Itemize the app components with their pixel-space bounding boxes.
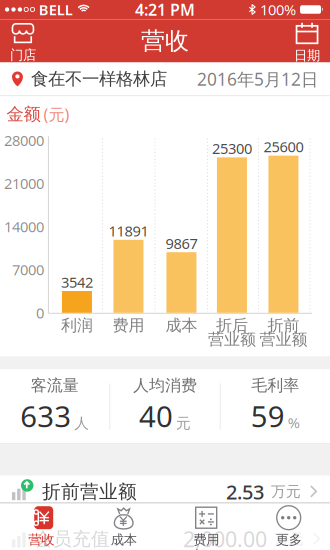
staticText: 营收: [141, 26, 189, 56]
staticText: 100%: [260, 0, 296, 19]
staticText: 折前营业额: [42, 480, 137, 503]
staticText: 9867: [165, 233, 197, 253]
staticText: 更多: [276, 532, 302, 548]
staticText: 折后: [216, 315, 248, 335]
staticText: 食在不一样格林店: [31, 68, 167, 90]
staticText: 4:21 PM: [135, 0, 195, 20]
staticText: 28000: [4, 131, 44, 150]
staticText: 利润: [61, 315, 93, 335]
staticText: 客流量: [31, 376, 79, 395]
staticText: 2.53: [226, 478, 264, 505]
staticText: 2,000.00: [183, 525, 267, 550]
staticText: 633: [20, 396, 71, 435]
staticText: 40: [139, 396, 173, 435]
staticText: 折前: [267, 315, 299, 335]
staticText: 25600: [263, 137, 303, 156]
staticText: 元: [176, 414, 191, 432]
staticText: BELL: [39, 0, 73, 19]
button[interactable]: 费用: [165, 503, 247, 549]
staticText: 成本: [165, 315, 197, 335]
staticText: 成本: [111, 532, 137, 548]
staticText: 25300: [212, 139, 252, 158]
staticText: 费用: [112, 315, 144, 335]
staticText: 金额: [6, 104, 40, 125]
staticText: 营业额: [259, 329, 307, 349]
staticText: 11891: [108, 221, 148, 241]
staticText: 人均消费: [133, 376, 197, 395]
staticText: 日期: [294, 47, 320, 64]
button[interactable]: 门店: [0, 19, 46, 62]
button[interactable]: 营收: [0, 503, 82, 549]
staticText: 营收: [28, 532, 54, 548]
staticText: 14000: [4, 217, 44, 236]
staticText: 毛利率: [251, 376, 299, 395]
button[interactable]: 折前营业额: [0, 476, 330, 503]
staticText: (元): [43, 104, 69, 125]
staticText: 万元: [271, 483, 301, 501]
staticText: 营业额: [208, 329, 256, 349]
staticText: 3542: [61, 272, 93, 292]
staticText: 59: [251, 396, 285, 435]
button[interactable]: 更多: [247, 503, 330, 549]
staticText: 万元: [274, 530, 304, 548]
staticText: 7000: [12, 260, 44, 279]
staticText: 21000: [4, 174, 44, 193]
staticText: 门店: [10, 47, 36, 63]
staticText: 费用: [193, 532, 219, 548]
staticText: 人: [74, 414, 89, 432]
staticText: 会员充值: [34, 527, 110, 550]
button[interactable]: 成本: [82, 503, 165, 549]
staticText: 0: [36, 303, 44, 322]
staticText: %: [288, 413, 300, 432]
button[interactable]: 日期: [284, 19, 330, 62]
staticText: 2016年5月12日: [197, 67, 318, 90]
button[interactable]: 食在不一样格林店: [0, 62, 330, 95]
